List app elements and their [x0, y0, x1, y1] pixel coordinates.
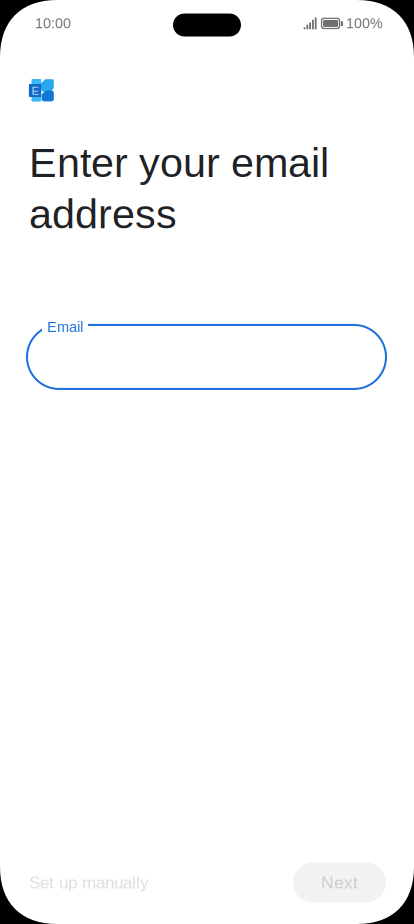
staticText: Email: [47, 319, 83, 335]
staticText: Next: [321, 873, 358, 892]
button[interactable]: Next: [293, 862, 386, 902]
staticText: 10:00: [35, 15, 71, 31]
staticText: E: [31, 84, 38, 97]
staticText: Enter your email address: [29, 140, 329, 237]
staticText: 100%: [346, 15, 383, 31]
staticText: Set up manually: [29, 873, 148, 892]
button[interactable]: Email: [27, 325, 386, 389]
button[interactable]: Set up manually: [17, 860, 160, 905]
